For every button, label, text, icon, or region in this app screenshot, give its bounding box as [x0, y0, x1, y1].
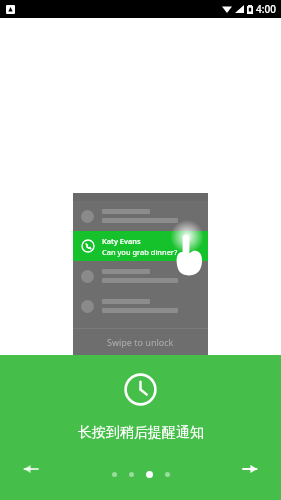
button[interactable] [112, 472, 117, 477]
button[interactable]: Next [233, 452, 267, 486]
staticText: Katy Evans [102, 236, 141, 246]
button[interactable] [146, 471, 153, 478]
button[interactable] [165, 472, 170, 477]
button[interactable]: Swipe to unlock [73, 329, 208, 355]
button[interactable] [129, 472, 134, 477]
staticText: Can you grab dinner? [102, 247, 178, 257]
button[interactable]: Previous [14, 452, 48, 486]
button[interactable]: Katy Evans [73, 231, 208, 261]
staticText: 长按到稍后提醒通知 [78, 424, 204, 442]
staticText: 4:00 [256, 2, 276, 16]
staticText: Swipe to unlock [107, 336, 174, 348]
